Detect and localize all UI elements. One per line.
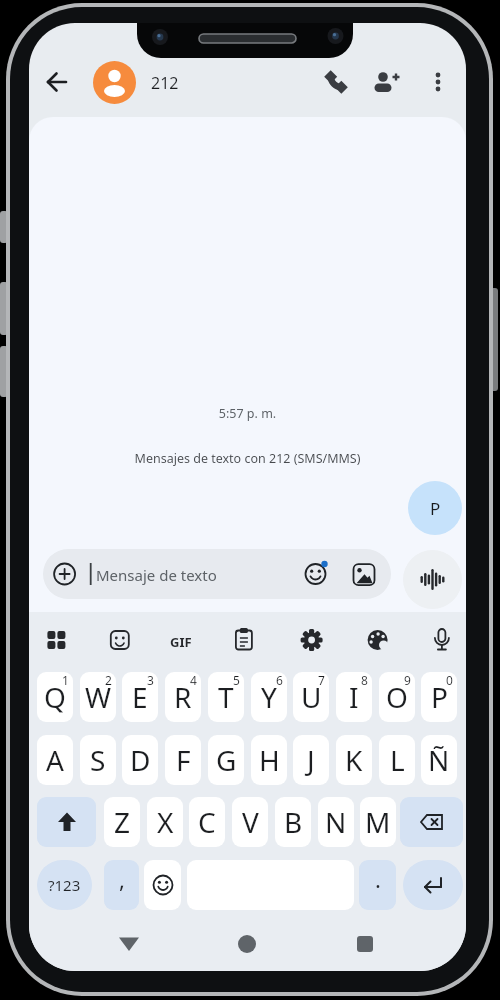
button[interactable]: N xyxy=(318,797,354,847)
staticText: . xyxy=(375,864,381,894)
staticText: ?123 xyxy=(48,875,81,895)
button[interactable] xyxy=(40,624,72,656)
button[interactable]: J xyxy=(293,735,329,785)
button[interactable] xyxy=(296,624,328,656)
staticText: D xyxy=(130,741,151,779)
button[interactable]: L xyxy=(379,735,415,785)
button[interactable]: G xyxy=(208,735,244,785)
button[interactable] xyxy=(426,624,458,656)
button[interactable]: P xyxy=(408,481,462,535)
staticText: H xyxy=(259,741,280,779)
staticText: 4 xyxy=(190,672,197,688)
button[interactable] xyxy=(166,624,198,656)
staticText: I xyxy=(349,678,359,716)
staticText: GIF xyxy=(170,633,192,651)
button[interactable] xyxy=(400,797,463,847)
button[interactable]: Ñ xyxy=(421,735,457,785)
button[interactable] xyxy=(362,624,394,656)
staticText: W xyxy=(85,678,112,716)
button[interactable]: P xyxy=(421,672,457,722)
button[interactable]: E xyxy=(122,672,158,722)
staticText: T xyxy=(218,678,234,716)
staticText: 7 xyxy=(318,672,325,688)
staticText: 212 xyxy=(151,72,179,94)
staticText: Ñ xyxy=(428,741,450,779)
staticText: 0 xyxy=(446,672,453,688)
staticText: Mensaje de texto xyxy=(96,565,217,585)
staticText: P xyxy=(430,497,441,520)
staticText: B xyxy=(284,803,303,841)
staticText: X xyxy=(157,803,174,841)
staticText: 5 xyxy=(233,672,240,688)
staticText: C xyxy=(198,803,216,841)
button[interactable]: C xyxy=(189,797,225,847)
button[interactable]: M xyxy=(360,797,396,847)
staticText: 2 xyxy=(105,672,112,688)
button[interactable]: O xyxy=(379,672,415,722)
staticText: Q xyxy=(44,678,66,716)
staticText: Z xyxy=(114,803,131,841)
staticText: P xyxy=(431,678,448,716)
button[interactable]: B xyxy=(275,797,311,847)
button[interactable] xyxy=(403,860,463,910)
staticText: J xyxy=(307,741,315,779)
button[interactable]: R xyxy=(165,672,201,722)
staticText: , xyxy=(119,864,125,894)
button[interactable] xyxy=(43,68,71,96)
button[interactable]: T xyxy=(208,672,244,722)
staticText: S xyxy=(90,741,106,779)
staticText: F xyxy=(176,741,191,779)
button[interactable] xyxy=(231,928,263,960)
button[interactable] xyxy=(93,61,136,104)
staticText: M xyxy=(365,803,391,841)
button[interactable]: S xyxy=(80,735,116,785)
staticText: V xyxy=(242,803,259,841)
button[interactable]: V xyxy=(232,797,268,847)
button[interactable]: , xyxy=(104,860,139,910)
staticText: Mensajes de texto con 212 (SMS/MMS) xyxy=(29,450,466,467)
button[interactable] xyxy=(37,797,96,847)
button[interactable]: F xyxy=(165,735,201,785)
button[interactable]: Y xyxy=(251,672,287,722)
staticText: 6 xyxy=(276,672,283,688)
staticText: 8 xyxy=(361,672,368,688)
staticText: 1 xyxy=(62,672,69,688)
button[interactable]: ?123 xyxy=(37,860,92,910)
button[interactable]: K xyxy=(336,735,372,785)
button[interactable]: U xyxy=(293,672,329,722)
button[interactable]: W xyxy=(80,672,116,722)
button[interactable] xyxy=(424,68,452,96)
button[interactable] xyxy=(403,550,462,609)
button[interactable] xyxy=(371,68,399,96)
staticText: 3 xyxy=(147,672,154,688)
button[interactable]: Z xyxy=(104,797,140,847)
staticText: E xyxy=(132,678,148,716)
staticText: N xyxy=(325,803,347,841)
button[interactable]: . xyxy=(359,860,396,910)
staticText: A xyxy=(46,741,64,779)
staticText: L xyxy=(390,741,405,779)
button[interactable] xyxy=(144,860,181,910)
button[interactable] xyxy=(349,928,381,960)
staticText: R xyxy=(174,678,192,716)
button[interactable] xyxy=(322,68,350,96)
staticText: Y xyxy=(261,678,277,716)
button[interactable]: A xyxy=(37,735,73,785)
button[interactable]: Q xyxy=(37,672,73,722)
staticText: 9 xyxy=(404,672,411,688)
button[interactable]: X xyxy=(147,797,183,847)
button[interactable] xyxy=(228,624,260,656)
staticText: 5:57 p. m. xyxy=(29,405,466,422)
staticText: U xyxy=(301,678,322,716)
button[interactable]: I xyxy=(336,672,372,722)
button[interactable]: Mensaje de texto xyxy=(43,549,391,599)
button[interactable]: H xyxy=(251,735,287,785)
button[interactable] xyxy=(113,928,145,960)
button[interactable] xyxy=(104,624,136,656)
staticText: G xyxy=(216,741,237,779)
button[interactable]: D xyxy=(122,735,158,785)
staticText: K xyxy=(345,741,363,779)
staticText: O xyxy=(386,678,408,716)
